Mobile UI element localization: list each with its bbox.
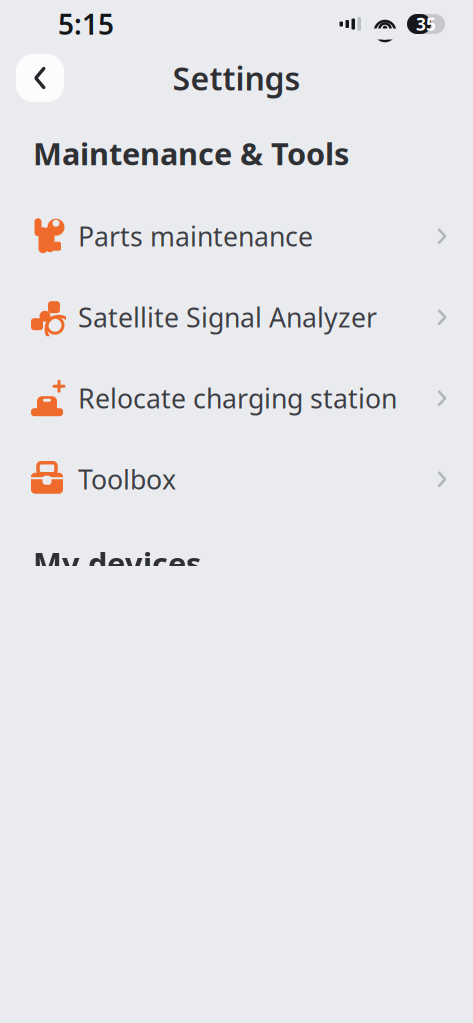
staticText: Satellite Signal Analyzer <box>78 299 377 335</box>
button[interactable]: Toolbox <box>0 439 473 520</box>
staticText: 35 <box>416 12 436 35</box>
staticText: Toolbox <box>78 461 176 497</box>
staticText: My devices <box>33 543 201 583</box>
staticText: 5:15 <box>58 5 114 43</box>
button[interactable]: Satellite Signal Analyzer <box>0 277 473 358</box>
button[interactable]: Relocate charging station <box>0 358 473 439</box>
staticText: Maintenance & Tools <box>33 133 349 174</box>
staticText: Parts maintenance <box>78 218 313 254</box>
staticText: Settings <box>172 57 300 99</box>
button[interactable]: Back <box>16 54 64 102</box>
staticText: Relocate charging station <box>78 380 397 416</box>
button[interactable]: Parts maintenance <box>0 196 473 277</box>
